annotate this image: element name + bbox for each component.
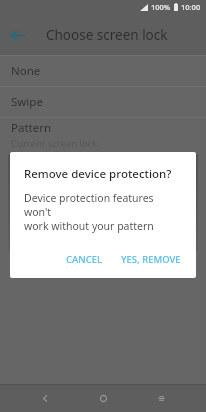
button[interactable]: None [0,56,206,86]
staticText: Current screen lock [11,137,98,150]
button[interactable]: CANCEL [59,247,110,272]
button[interactable]: Home [90,385,117,412]
button[interactable]: Swipe [0,87,206,117]
staticText: None [11,63,41,79]
staticText: Swipe [11,94,43,110]
staticText: 10:00 [181,2,201,12]
button[interactable]: YES, REMOVE [114,247,188,272]
staticText: Device protection features won't work wi… [24,191,182,233]
staticText: 100% [151,2,171,12]
button[interactable]: Navigate up [0,18,34,52]
staticText: CANCEL [66,253,103,266]
staticText: Choose screen lock [46,26,168,44]
staticText: YES, REMOVE [121,253,181,266]
staticText: Pattern [11,120,52,136]
button[interactable]: Recent apps [148,385,175,412]
button[interactable]: Back [32,385,59,412]
button[interactable]: Pattern [0,118,206,152]
staticText: Remove device protection? [24,166,172,182]
